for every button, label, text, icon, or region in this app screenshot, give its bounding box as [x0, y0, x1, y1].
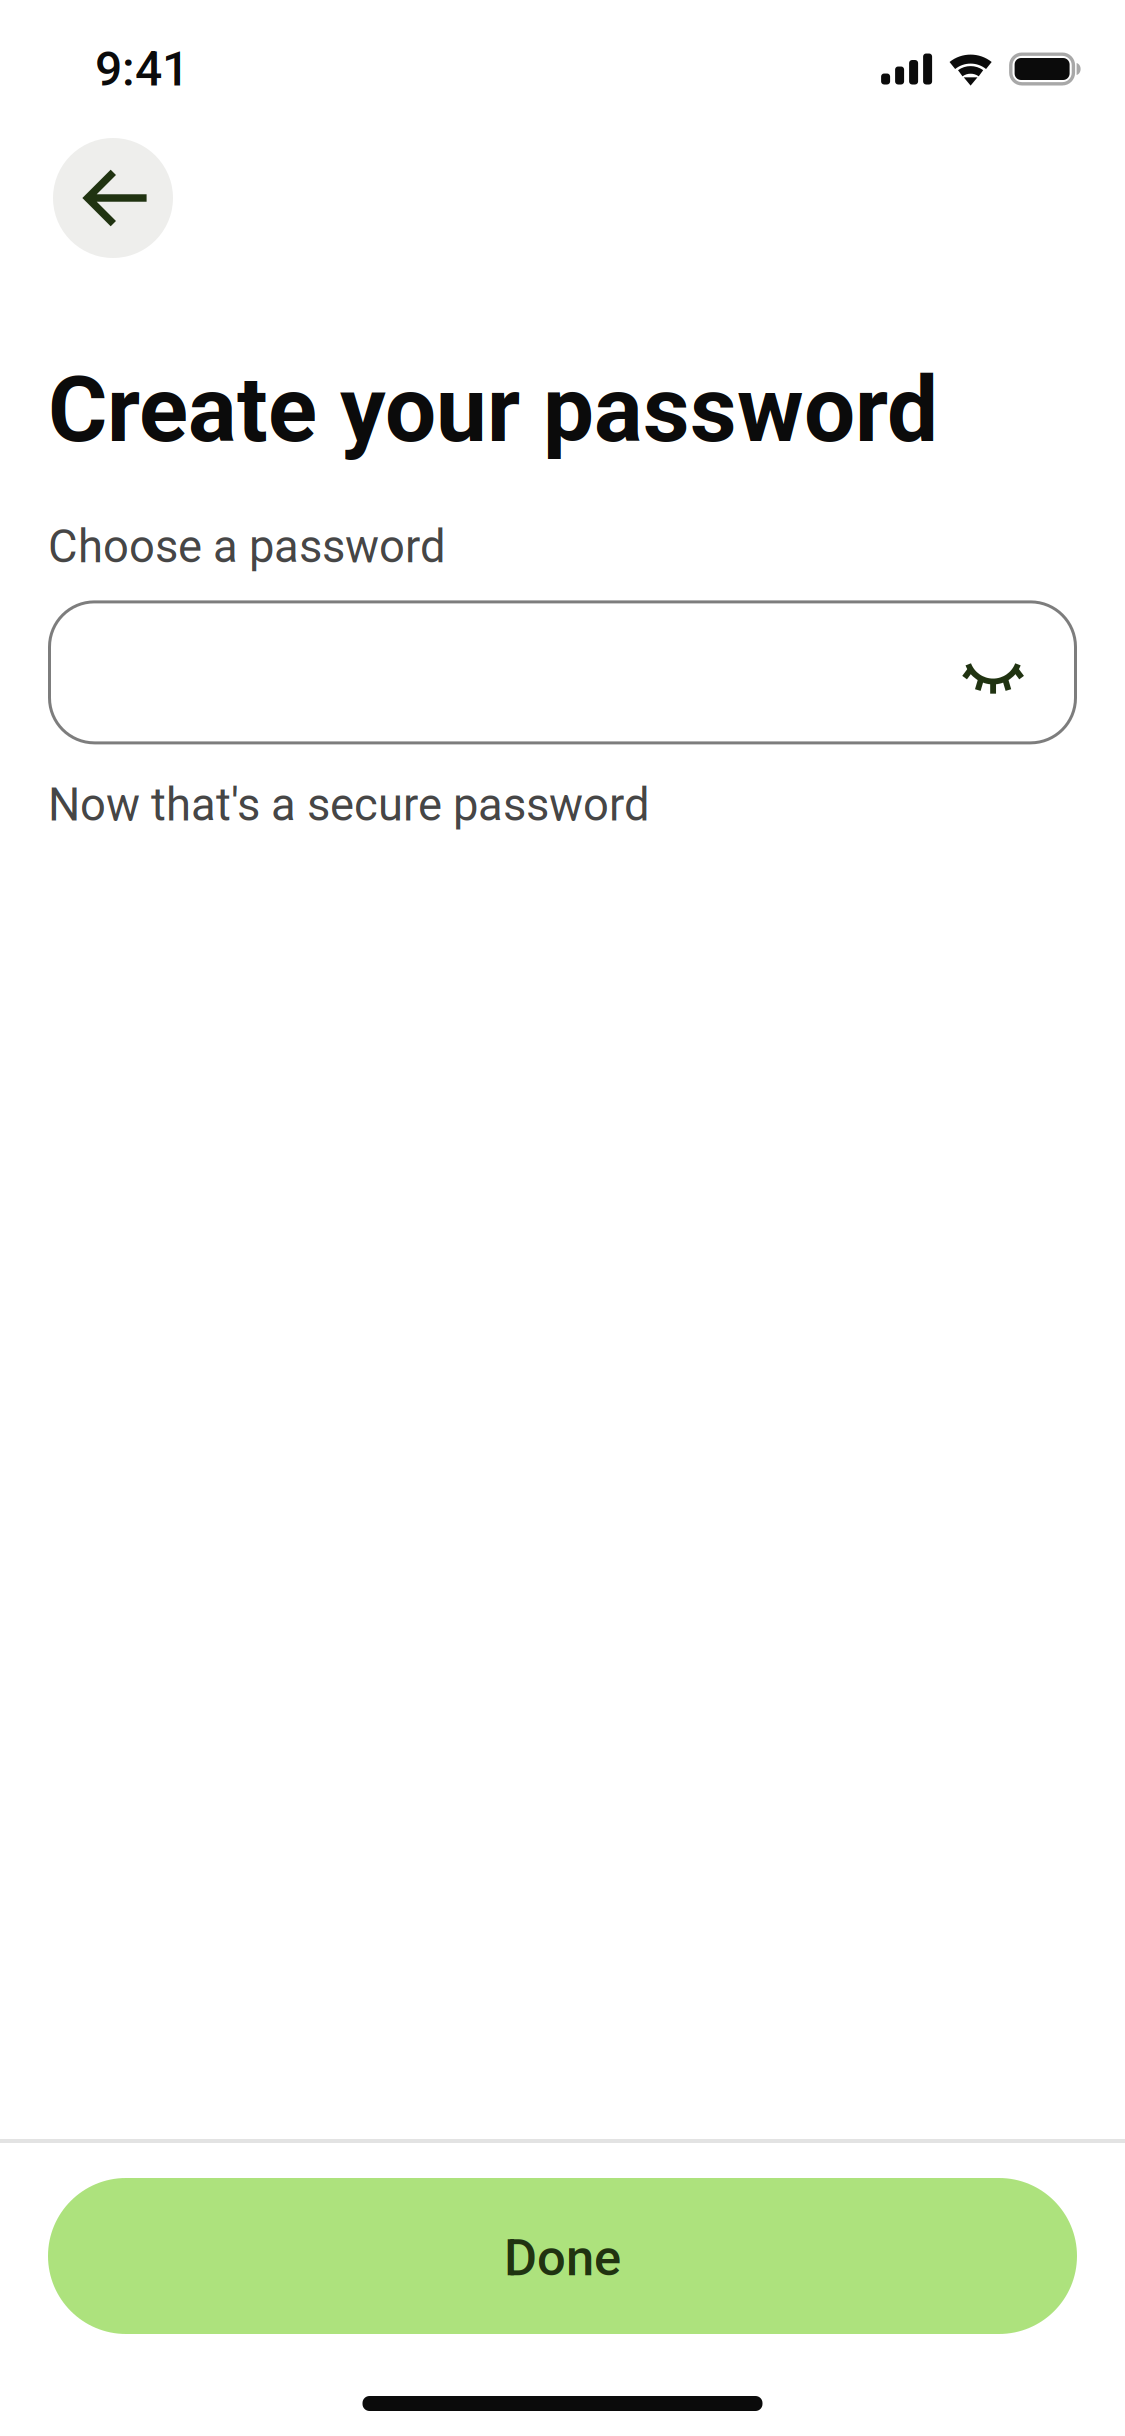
staticText: Now that's a secure password	[48, 778, 650, 831]
staticText: Choose a password	[48, 520, 446, 573]
staticText: 9:41	[95, 41, 189, 97]
button[interactable]: Back	[53, 138, 173, 258]
button[interactable]: Choose a password	[48, 600, 1077, 744]
button[interactable]: Show password	[962, 650, 1077, 694]
button[interactable]: Done	[48, 2178, 1077, 2334]
staticText: Done	[504, 2228, 621, 2288]
staticText: Create your password	[48, 357, 938, 463]
